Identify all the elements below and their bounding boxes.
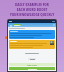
button[interactable]	[28, 58, 36, 60]
staticText: YOUR KNOWLEDGE QUICKLY	[3, 13, 61, 17]
button[interactable]: Lesson 1	[13, 24, 21, 26]
button[interactable]	[9, 30, 55, 39]
staticText: EACH WORD BOOST	[3, 8, 61, 12]
button[interactable]	[9, 40, 55, 49]
staticText: CONTINUE	[28, 68, 37, 70]
staticText: Show answer	[27, 64, 38, 66]
button[interactable]: Show answer	[9, 63, 55, 66]
staticText: Lesson 1	[14, 24, 21, 26]
button[interactable]: Menu	[9, 24, 12, 27]
button[interactable]: CONTINUE	[9, 67, 55, 70]
button[interactable]: Search	[53, 24, 55, 26]
staticText: DAILY EXAMPLES FOR	[3, 3, 61, 7]
